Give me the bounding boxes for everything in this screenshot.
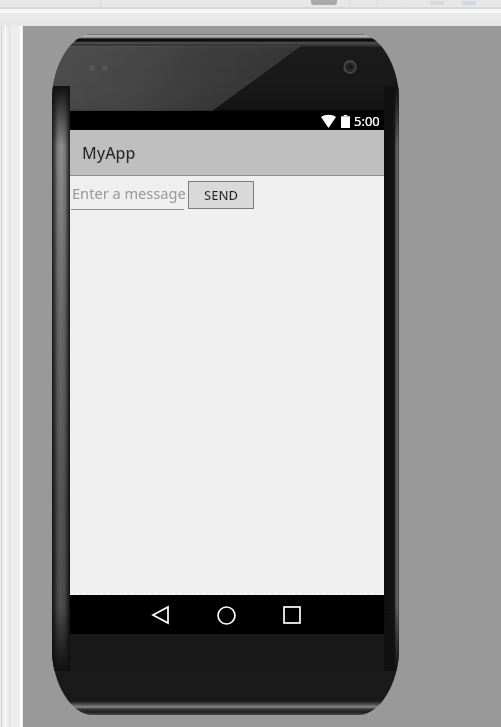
staticText: MyApp [82,142,136,164]
button[interactable]: Device selector [311,0,337,5]
staticText: Enter a message [72,183,186,203]
button[interactable]: Home [204,598,248,632]
staticText: SEND [204,186,238,204]
button[interactable]: Back [138,598,182,632]
staticText: 5:00 [354,112,380,130]
button[interactable]: Recent apps [270,598,314,632]
button[interactable] [71,179,184,210]
button[interactable]: SEND [188,181,254,209]
